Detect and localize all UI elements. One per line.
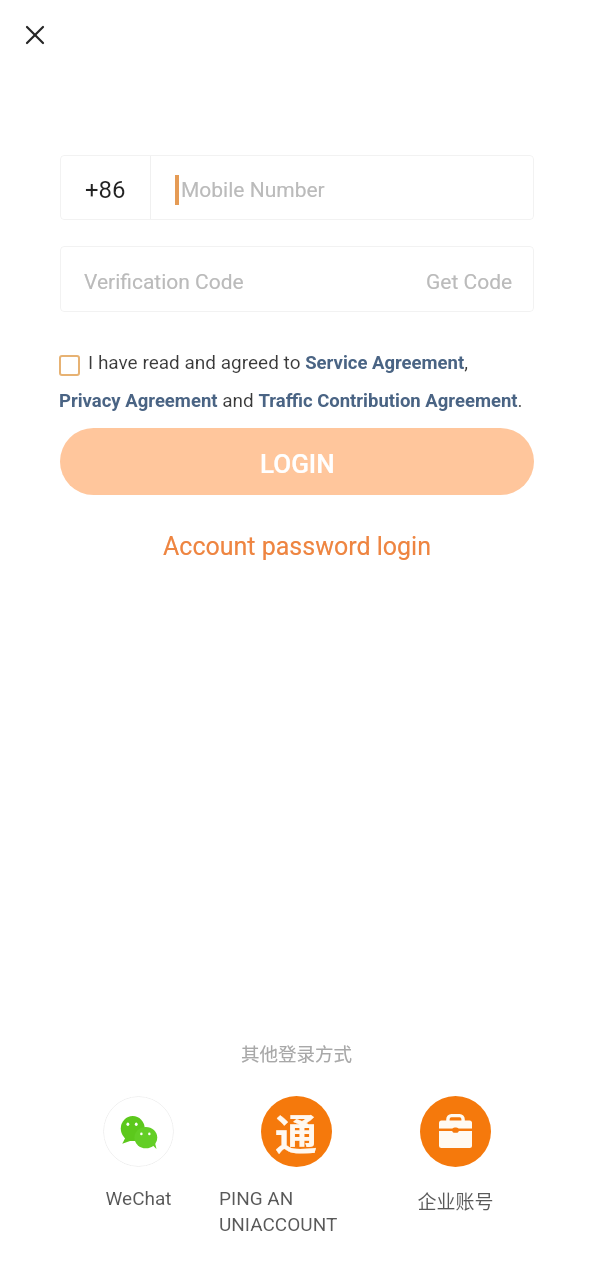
button[interactable]: Get Code	[422, 246, 517, 312]
staticText: PING AN UNIACCOUNT	[219, 1187, 343, 1235]
button[interactable]: Privacy Agreement and Traffic Contributi…	[59, 389, 523, 411]
button[interactable]: Close	[11, 11, 59, 59]
staticText: WeChat	[86, 1187, 191, 1209]
staticText: 企业账号	[403, 1187, 508, 1215]
button[interactable]: WeChat	[86, 1096, 191, 1209]
button[interactable]: 企业账号	[403, 1096, 508, 1215]
button[interactable]: Agree to terms	[59, 355, 80, 376]
staticText: 通	[275, 1101, 318, 1162]
button[interactable]: 通	[219, 1096, 343, 1261]
button[interactable]: LOGIN	[60, 428, 534, 495]
staticText: Get Code	[426, 270, 513, 295]
staticText: I have read and agreed to Service Agreem…	[88, 351, 468, 373]
staticText: Privacy Agreement and Traffic Contributi…	[59, 389, 523, 411]
button[interactable]: Verification Code	[84, 247, 422, 311]
staticText: LOGIN	[260, 449, 335, 479]
staticText: Account password login	[163, 532, 431, 561]
staticText: 其他登录方式	[241, 1040, 353, 1067]
button[interactable]: +86	[60, 156, 150, 219]
button[interactable]: Mobile Number	[151, 156, 534, 219]
button[interactable]: Account password login	[151, 527, 443, 566]
staticText: +86	[85, 176, 126, 204]
staticText: Mobile Number	[181, 178, 325, 203]
staticText: Verification Code	[84, 270, 244, 295]
button[interactable]: I have read and agreed to Service Agreem…	[88, 351, 468, 373]
